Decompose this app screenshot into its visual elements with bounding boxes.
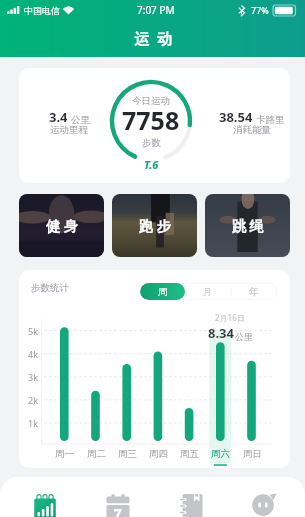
button[interactable]: 周	[140, 283, 185, 300]
staticText: 4k	[28, 348, 38, 360]
button[interactable]: Statistics	[9, 477, 81, 517]
staticText: 5k	[28, 325, 38, 337]
staticText: 周二	[87, 448, 106, 460]
staticText: 中国电信	[24, 5, 60, 16]
staticText: 3k	[28, 371, 38, 383]
staticText: 周一	[55, 448, 74, 460]
button[interactable]: 年	[231, 283, 277, 300]
staticText: 38.54	[219, 108, 253, 126]
staticText: 运 动	[134, 28, 172, 48]
staticText: T.6	[144, 157, 159, 172]
staticText: 1k	[28, 417, 38, 429]
staticText: 步数	[142, 137, 161, 149]
button[interactable]: Calendar	[81, 477, 154, 517]
button[interactable]: 跳 绳	[205, 194, 290, 257]
staticText: 公里	[71, 114, 90, 126]
staticText: 卡路里	[256, 114, 285, 126]
staticText: 今日运动	[132, 95, 170, 107]
staticText: 2k	[28, 394, 38, 406]
staticText: 77%	[251, 4, 269, 16]
staticText: 7:07 PM	[137, 3, 175, 17]
staticText: 周六	[211, 448, 230, 460]
staticText: 8.34	[208, 324, 234, 342]
staticText: 周	[158, 286, 168, 298]
staticText: 周日	[243, 448, 262, 460]
staticText: 跑 步	[139, 216, 171, 235]
staticText: 7758	[122, 103, 180, 137]
staticText: 跳 绳	[232, 216, 264, 235]
staticText: 3.4	[49, 108, 68, 126]
staticText: 健 身	[46, 216, 78, 235]
staticText: 2月16日	[215, 312, 245, 323]
staticText: 月	[203, 286, 213, 298]
staticText: 周三	[118, 448, 137, 460]
button[interactable]: 健 身	[19, 194, 104, 257]
staticText: 年	[249, 286, 259, 298]
button[interactable]: Messages	[227, 477, 300, 517]
staticText: 公里	[235, 331, 253, 342]
staticText: 消耗能量	[233, 124, 271, 136]
button[interactable]: 月	[185, 283, 231, 300]
staticText: 周四	[149, 448, 168, 460]
staticText: 步数统计	[31, 282, 69, 294]
button[interactable]: Notes	[154, 477, 227, 517]
staticText: 周五	[180, 448, 199, 460]
button[interactable]: 跑 步	[112, 194, 197, 257]
staticText: 运动里程	[50, 124, 88, 136]
